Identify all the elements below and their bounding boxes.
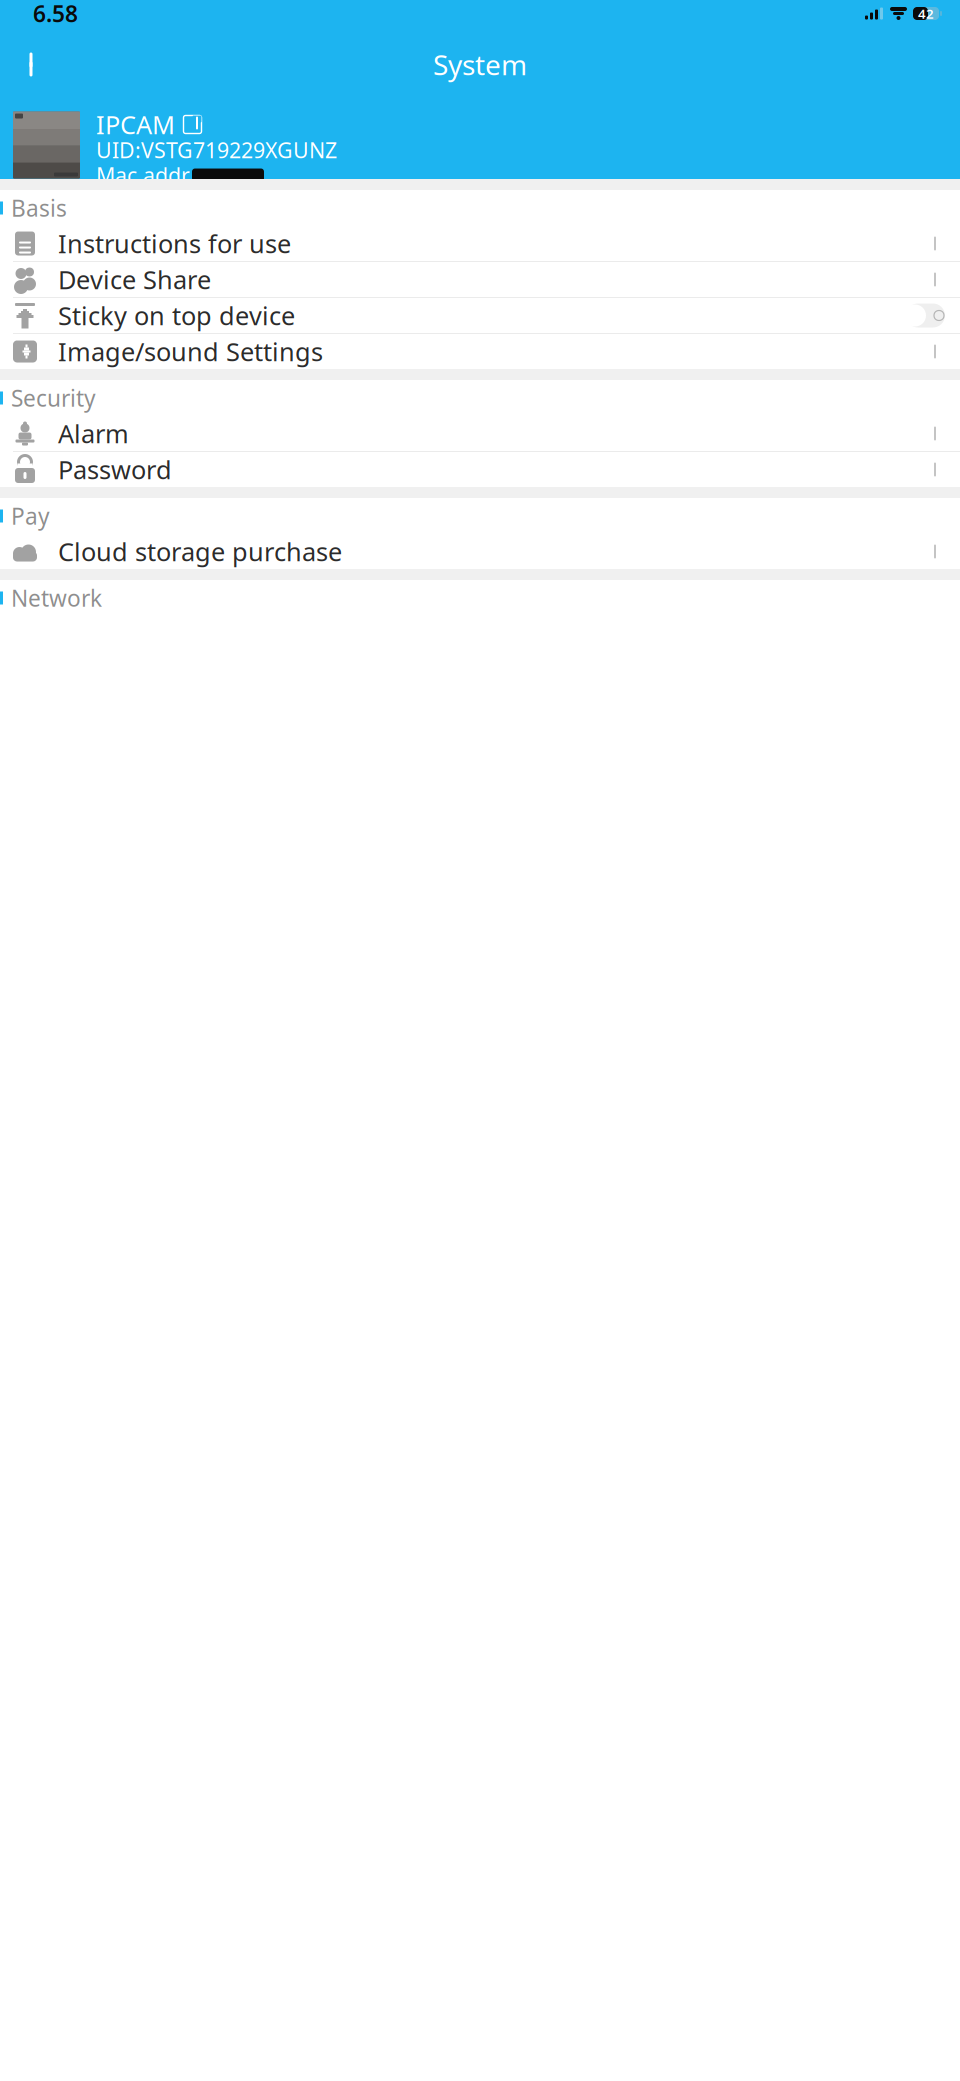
- staticText: IPCAM: [96, 108, 175, 141]
- button[interactable]: Cloud storage purchase: [0, 534, 960, 569]
- button[interactable]: Rename device: [183, 115, 202, 134]
- button[interactable]: Device Share: [0, 262, 960, 297]
- button[interactable]: Image/sound Settings: [0, 334, 960, 369]
- staticText: Basis: [11, 193, 67, 223]
- staticText: Password: [58, 453, 172, 486]
- button[interactable]: Instructions for use: [0, 226, 960, 261]
- staticText: UID:VSTG719229XGUNZ: [96, 136, 337, 164]
- staticText: Mac addr: [96, 161, 190, 189]
- staticText: Security: [11, 383, 96, 413]
- staticText: System: [433, 46, 527, 83]
- staticText: Image/sound Settings: [58, 335, 323, 368]
- staticText: Network: [11, 583, 102, 613]
- staticText: Alarm: [58, 417, 129, 450]
- staticText: Pay: [11, 501, 50, 531]
- button[interactable]: Alarm: [0, 416, 960, 451]
- staticText: Cloud storage purchase: [58, 535, 342, 568]
- button[interactable]: Sticky on top device: [0, 298, 960, 333]
- staticText: 42: [918, 5, 934, 22]
- staticText: 6.58: [33, 0, 78, 28]
- button[interactable]: Back: [8, 42, 54, 86]
- button[interactable]: Password: [0, 452, 960, 487]
- staticText: Device Share: [58, 263, 211, 296]
- staticText: Sticky on top device: [58, 299, 295, 332]
- staticText: Instructions for use: [58, 227, 291, 260]
